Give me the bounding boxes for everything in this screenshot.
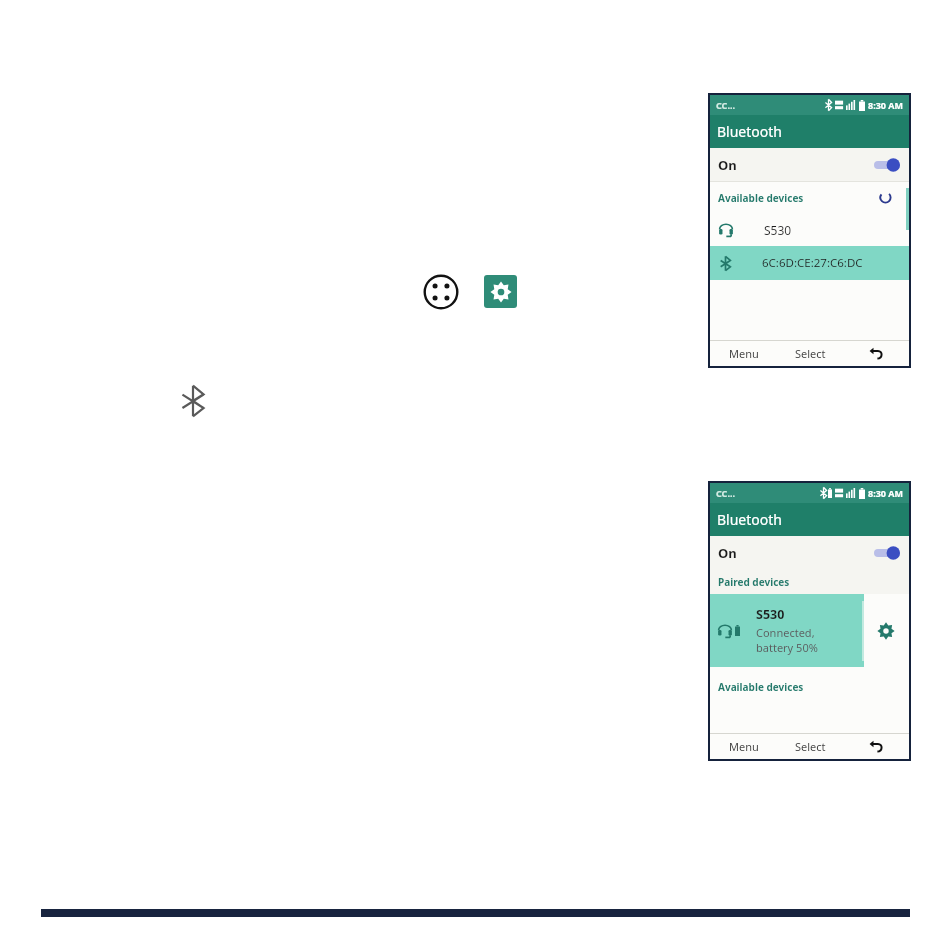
button[interactable]: Back bbox=[843, 341, 909, 366]
button[interactable]: Back bbox=[843, 734, 909, 759]
staticText: Paired devices bbox=[718, 575, 790, 589]
staticText: CC... bbox=[716, 487, 735, 499]
staticText: Available devices bbox=[718, 191, 804, 205]
button[interactable]: On bbox=[710, 536, 909, 569]
button[interactable]: Select bbox=[777, 341, 843, 366]
staticText: 8:30 AM bbox=[868, 99, 904, 111]
staticText: CC... bbox=[716, 99, 735, 111]
staticText: 6C:6D:CE:27:C6:DC bbox=[762, 255, 863, 271]
staticText: On bbox=[718, 156, 737, 174]
staticText: Bluetooth bbox=[717, 122, 782, 141]
button[interactable]: All apps bbox=[423, 274, 459, 310]
staticText: Connected, bbox=[756, 625, 815, 640]
button[interactable]: Device settings bbox=[877, 622, 895, 640]
button[interactable]: Bluetooth toggle bbox=[874, 546, 900, 560]
button[interactable]: S530 bbox=[710, 213, 909, 246]
staticText: Select bbox=[795, 346, 826, 361]
staticText: Available devices bbox=[718, 680, 804, 694]
button[interactable]: Menu bbox=[710, 341, 777, 366]
staticText: 8:30 AM bbox=[868, 487, 904, 499]
staticText: battery 50% bbox=[756, 640, 818, 655]
staticText: Bluetooth bbox=[717, 510, 782, 529]
other: Bluetooth bbox=[181, 385, 205, 417]
button[interactable]: On bbox=[710, 148, 909, 181]
button[interactable]: Select bbox=[777, 734, 843, 759]
staticText: S530 bbox=[764, 222, 792, 238]
button[interactable]: S530 bbox=[710, 594, 864, 667]
staticText: On bbox=[718, 544, 737, 562]
button[interactable]: 6C:6D:CE:27:C6:DC bbox=[710, 246, 909, 280]
staticText: S530 bbox=[756, 606, 785, 623]
button[interactable]: Menu bbox=[710, 734, 777, 759]
button[interactable]: Bluetooth toggle bbox=[874, 158, 900, 172]
staticText: Select bbox=[795, 739, 826, 754]
staticText: Menu bbox=[729, 346, 759, 361]
button[interactable]: Refresh bbox=[878, 190, 893, 205]
staticText: Menu bbox=[729, 739, 759, 754]
button[interactable]: Settings bbox=[484, 275, 517, 308]
